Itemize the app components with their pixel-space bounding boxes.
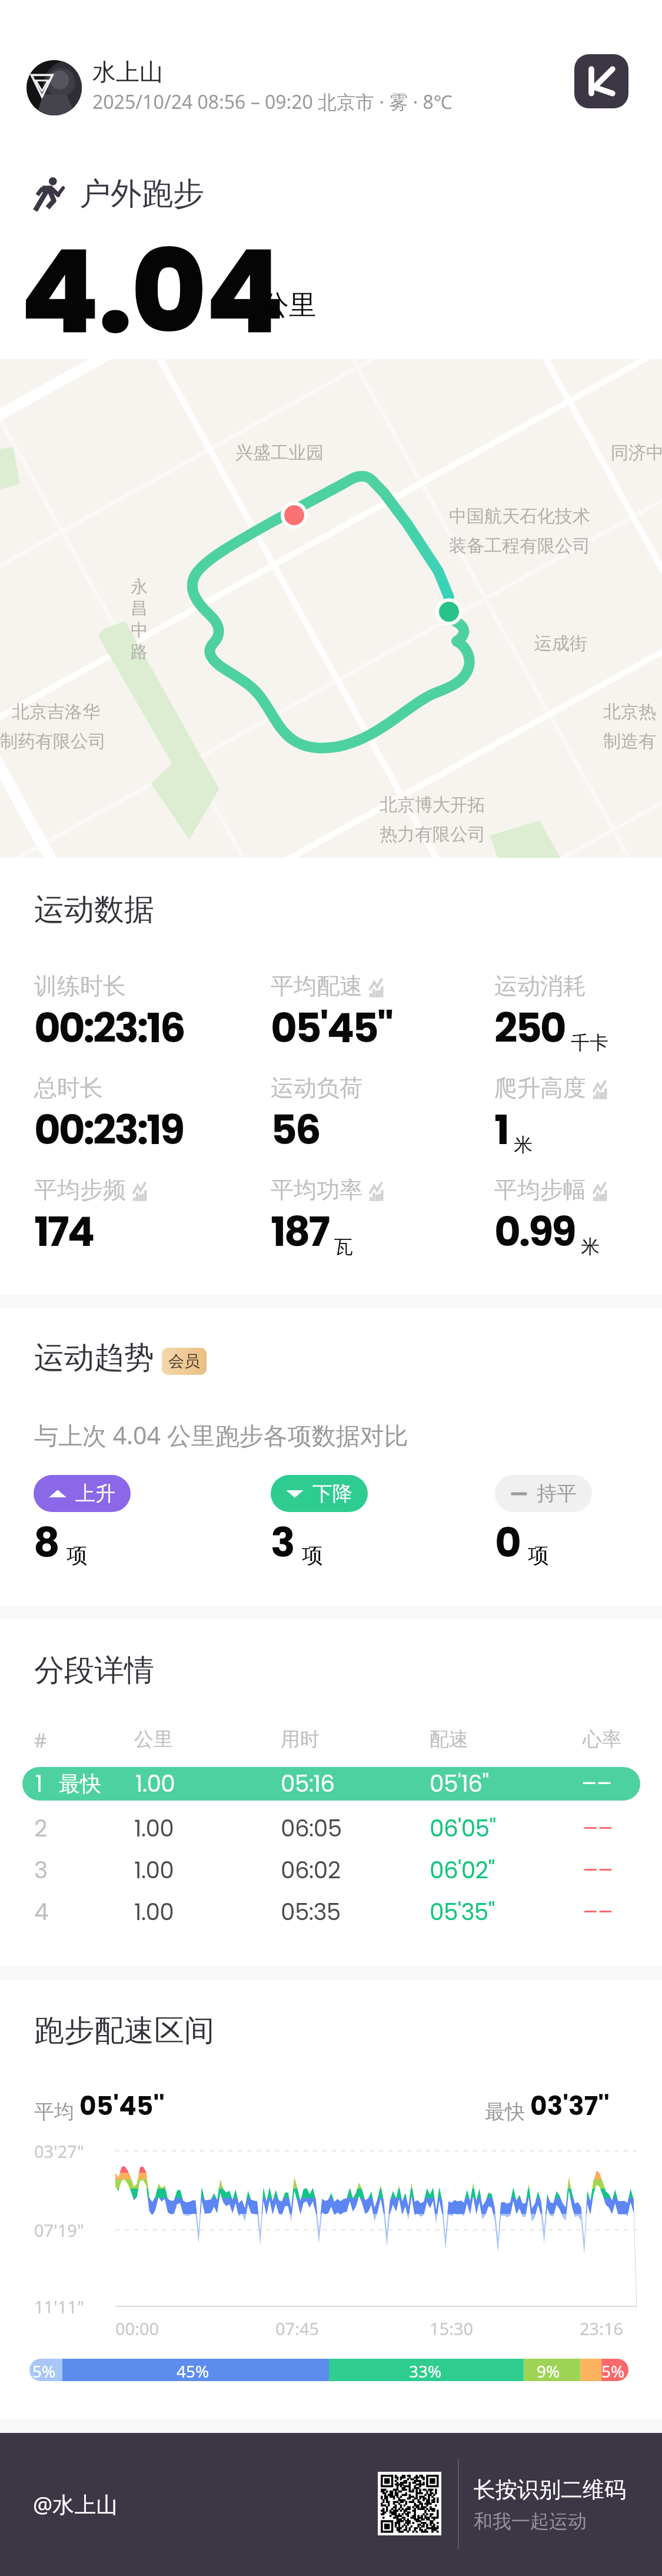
staticText: 长按识别二维码 [474, 2476, 626, 2504]
staticText: –– [583, 1854, 613, 1887]
staticText: 户外跑步 [79, 174, 204, 214]
staticText: 心率 [583, 1727, 621, 1752]
staticText: 分段详情 [34, 1652, 154, 1689]
staticText: 运动数据 [34, 891, 154, 929]
button[interactable]: 2 [0, 1812, 662, 1845]
staticText: 千卡 [571, 1031, 608, 1055]
staticText: 1 [494, 1102, 508, 1159]
staticText: 1.00 [134, 1896, 174, 1928]
staticText: 平均步幅 [494, 1175, 586, 1204]
staticText: –– [583, 1896, 613, 1928]
staticText: 05'45'' [79, 2088, 165, 2124]
staticText: 03'27" [34, 2140, 84, 2163]
staticText: 平均 [34, 2097, 79, 2124]
staticText: 1.00 [135, 1768, 175, 1800]
staticText: 33% [409, 2360, 442, 2382]
button[interactable]: 3 [0, 1854, 662, 1887]
staticText: 配速 [430, 1727, 468, 1752]
staticText: 06:05 [281, 1812, 342, 1845]
staticText: 中国航天石化技术 [449, 505, 590, 528]
staticText: 项 [302, 1542, 323, 1569]
staticText: 总时长 [34, 1073, 103, 1102]
staticText: 00:00 [115, 2317, 159, 2340]
staticText: 瓦 [334, 1235, 353, 1258]
staticText: 装备工程有限公司 [449, 535, 590, 557]
staticText: 爬升高度 [494, 1073, 586, 1102]
staticText: 5% [32, 2360, 56, 2382]
staticText: 跑步配速区间 [34, 2012, 214, 2050]
staticText: 8 [34, 1514, 60, 1572]
staticText: 00:23:19 [34, 1102, 184, 1159]
other: Outdoor running [31, 177, 66, 212]
staticText: 06:02 [281, 1854, 341, 1887]
staticText: 项 [528, 1542, 549, 1569]
staticText: 06'05'' [430, 1812, 496, 1845]
staticText: 1.00 [134, 1854, 174, 1887]
staticText: 2025/10/24 08:56 – 09:20 北京市 · 雾 · 8℃ [92, 89, 453, 115]
staticText: 永 [131, 576, 148, 598]
staticText: 2 [34, 1812, 47, 1845]
staticText: 56 [271, 1102, 320, 1159]
button[interactable]: Route map [0, 359, 662, 858]
staticText: 23:16 [580, 2317, 624, 2340]
staticText: 05:35 [281, 1896, 341, 1928]
staticText: 平均配速 [271, 972, 362, 1000]
staticText: 米 [581, 1235, 600, 1258]
staticText: 项 [66, 1542, 88, 1569]
staticText: 上升 [75, 1481, 115, 1506]
staticText: 174 [34, 1204, 93, 1261]
staticText: 11'11" [34, 2295, 84, 2318]
staticText: 中 [131, 619, 148, 641]
staticText: 06'02'' [430, 1854, 495, 1887]
staticText: 制药有限公司 [0, 730, 106, 752]
staticText: 0.99 [494, 1204, 575, 1261]
button[interactable]: 上升 [34, 1475, 131, 1512]
staticText: 北京博大开拓 [380, 794, 485, 816]
staticText: 训练时长 [34, 972, 126, 1000]
staticText: 5% [601, 2360, 625, 2382]
button[interactable]: 持平 [495, 1475, 592, 1512]
staticText: 45% [177, 2360, 209, 2382]
staticText: 同济中 [611, 442, 662, 464]
staticText: 公里 [261, 288, 317, 323]
button[interactable]: 1 [22, 1767, 640, 1801]
staticText: 路 [131, 641, 148, 663]
staticText: 和我一起运动 [474, 2509, 587, 2533]
button[interactable]: 下降 [271, 1475, 368, 1512]
staticText: 1.00 [134, 1812, 174, 1845]
staticText: 运成街 [534, 632, 587, 655]
staticText: 昌 [131, 598, 148, 619]
staticText: 与上次 4.04 公里跑步各项数据对比 [34, 1418, 408, 1451]
staticText: 05:16 [281, 1768, 335, 1800]
button[interactable]: 会员 [162, 1348, 207, 1375]
staticText: 北京热 [603, 701, 656, 723]
staticText: 4 [34, 1896, 48, 1928]
staticText: 4.04 [20, 211, 283, 372]
staticText: 热力有限公司 [380, 823, 485, 846]
staticText: 平均功率 [271, 1175, 362, 1204]
button[interactable]: Keep app logo [574, 54, 628, 108]
staticText: –– [583, 1812, 613, 1845]
button[interactable]: User avatar [26, 60, 82, 115]
staticText: 9% [537, 2360, 560, 2382]
staticText: 会员 [168, 1351, 200, 1371]
staticText: 07'19" [34, 2219, 84, 2242]
staticText: 0 [495, 1514, 521, 1572]
staticText: 15:30 [430, 2317, 474, 2340]
staticText: 运动消耗 [494, 972, 586, 1000]
staticText: 平均步频 [34, 1175, 126, 1204]
staticText: 下降 [312, 1481, 352, 1506]
staticText: 05'16'' [430, 1768, 489, 1800]
staticText: 水上山 [92, 57, 163, 87]
staticText: 3 [34, 1854, 48, 1887]
staticText: 公里 [134, 1727, 173, 1752]
staticText: 187 [271, 1204, 328, 1261]
button[interactable]: 4 [0, 1895, 662, 1928]
staticText: 250 [494, 1000, 565, 1057]
staticText: 05'35'' [430, 1896, 495, 1928]
staticText: 05'45" [271, 1000, 392, 1057]
staticText: 00:23:16 [34, 1000, 184, 1057]
staticText: 用时 [281, 1727, 320, 1752]
staticText: @水上山 [33, 2489, 118, 2519]
staticText: # [34, 1727, 47, 1753]
